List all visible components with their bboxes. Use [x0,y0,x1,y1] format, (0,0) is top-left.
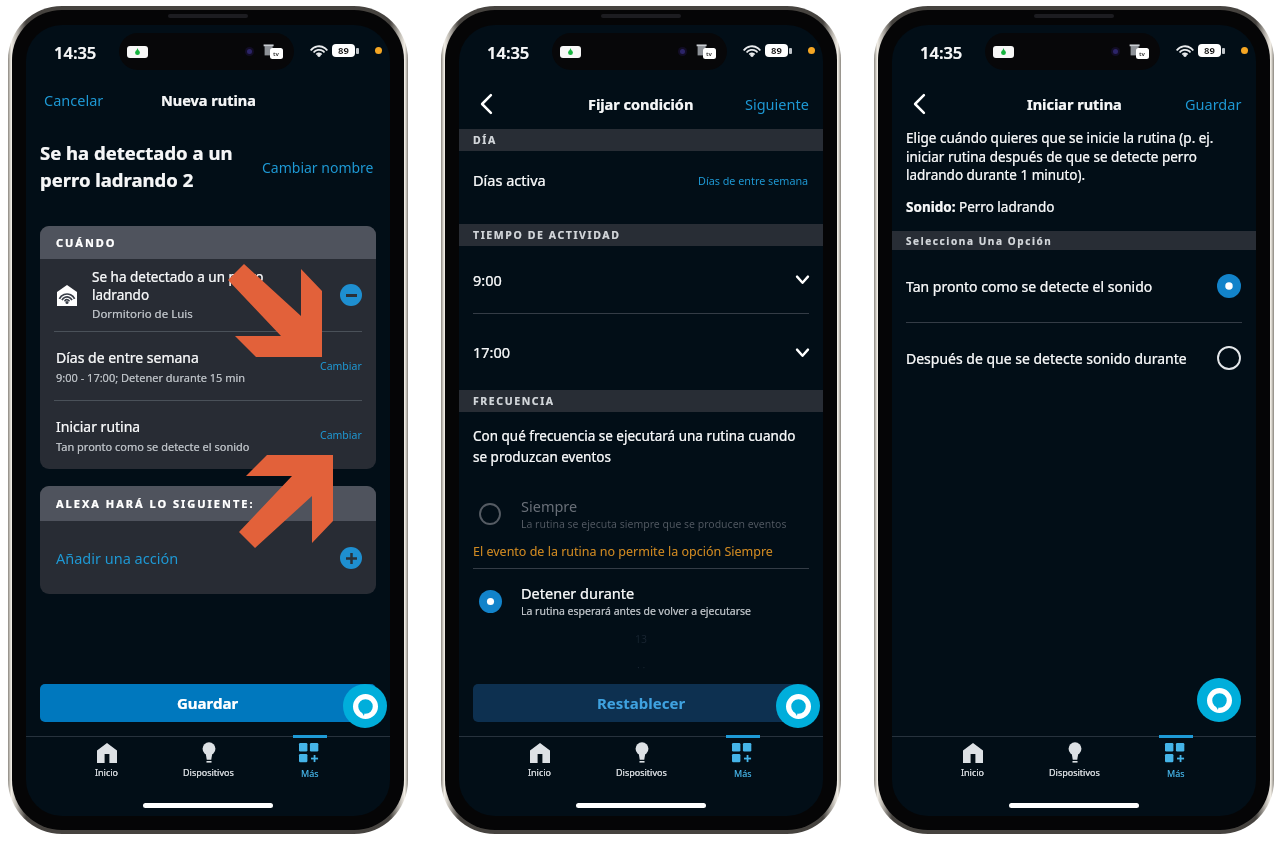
staticText: Elige cuándo quieres que se inicie la ru… [906,129,1242,183]
staticText: El evento de la rutina no permite la opc… [473,543,773,560]
staticText: 89 [771,44,782,57]
staticText: Cancelar [44,90,104,110]
staticText: 89 [338,44,349,57]
button[interactable]: Atrás [902,88,936,120]
staticText: Siempre [521,496,578,516]
staticText: Días activa [473,170,698,190]
staticText: Selecciona Una Opción [906,234,1053,248]
staticText: 14:35 [920,41,963,63]
staticText: Perro ladrando [959,198,1055,216]
staticText: Detener durante [521,583,635,603]
button[interactable]: Después de que se detecte sonido durante [892,323,1256,393]
staticText: DÍA [473,133,497,147]
button[interactable]: Cambiar nombre [262,158,374,177]
staticText: Restablecer [597,693,686,713]
staticText: Inicio [528,766,552,778]
button[interactable]: Siguiente [729,90,823,118]
button[interactable]: Se ha detectado a un perro ladrando [40,259,376,331]
button[interactable]: Tan pronto como se detecte el sonido [892,250,1256,322]
button[interactable]: 9:00 [459,246,823,313]
staticText: Añadir una acción [56,548,340,568]
button[interactable]: Dispositivos [158,737,259,795]
staticText: Dispositivos [616,766,667,778]
staticText: Se ha detectado a un perro ladrando 2 [40,140,262,193]
button[interactable]: Inicio [489,737,591,795]
staticText: tv [706,50,713,58]
button[interactable]: Inicio [56,737,158,795]
staticText: tv [1139,50,1146,58]
button[interactable]: Quitar [340,284,362,306]
button[interactable]: Siempre [459,496,823,531]
staticText: Más [734,767,752,779]
button[interactable]: Días de entre semana [40,332,376,400]
staticText: Siguiente [745,94,809,114]
staticText: La rutina esperará antes de volver a eje… [521,604,752,618]
button[interactable]: Iniciar rutina [40,401,376,469]
staticText: La rutina se ejecuta siempre que se prod… [521,517,787,531]
staticText: 17:00 [473,342,796,362]
button[interactable]: Alexa [343,684,387,728]
staticText: Guardar [177,693,239,713]
button[interactable]: Dispositivos [1024,737,1125,795]
staticText: Iniciar rutina [56,417,141,436]
staticText: Inicio [961,766,985,778]
button[interactable]: Alexa [776,684,820,728]
staticText: Tan pronto como se detecte el sonido [56,439,250,454]
staticText: 9:00 [473,270,796,290]
button[interactable]: Alexa [1197,678,1241,722]
staticText: Dispositivos [1049,766,1100,778]
staticText: 14:35 [54,41,97,63]
staticText: Con qué frecuencia se ejecutará una ruti… [473,427,809,466]
staticText: Fijar condición [588,94,694,114]
button[interactable]: Detener durante [459,583,823,618]
button[interactable]: Cancelar [26,86,122,114]
staticText: Se ha detectado a un perro ladrando [92,268,287,304]
button[interactable]: Guardar [1169,90,1256,118]
staticText: Sonido: [906,198,959,216]
button[interactable]: Guardar [40,684,376,722]
staticText: tv [273,50,280,58]
staticText: Tan pronto como se detecte el sonido [906,277,1217,296]
button[interactable]: Restablecer [473,684,809,722]
button[interactable]: Atrás [469,88,503,120]
button[interactable]: Más [259,737,360,795]
staticText: Dispositivos [183,766,234,778]
button[interactable]: Inicio [922,737,1024,795]
button[interactable]: Añadir una acción [40,521,376,594]
button[interactable]: Más [692,737,793,795]
staticText: Cambiar nombre [262,158,374,177]
staticText: Dormitorio de Luis [92,306,193,322]
staticText: Guardar [1185,94,1242,114]
staticText: 9:00 - 17:00; Detener durante 15 min [56,370,246,385]
staticText: 14:35 [487,41,530,63]
staticText: Cambiar [320,428,362,442]
button[interactable]: Días activa [459,151,823,209]
button[interactable]: 17:00 [459,314,823,390]
staticText: ALEXA HARÁ LO SIGUIENTE: [56,496,255,511]
staticText: TIEMPO DE ACTIVIDAD [473,228,621,242]
staticText: 13 [635,632,648,646]
staticText: Cambiar [320,359,362,373]
staticText: FRECUENCIA [473,394,555,408]
staticText: CUÁNDO [56,235,117,250]
staticText: Nueva rutina [161,90,256,110]
staticText: Más [301,767,319,779]
staticText: Días de entre semana [698,173,809,188]
staticText: Días de entre semana [56,348,199,367]
button[interactable]: Más [1125,737,1226,795]
staticText: 89 [1204,44,1215,57]
staticText: Inicio [95,766,119,778]
staticText: Después de que se detecte sonido durante [906,349,1217,368]
staticText: Iniciar rutina [1027,94,1122,114]
button[interactable]: Dispositivos [591,737,692,795]
staticText: Más [1167,767,1185,779]
